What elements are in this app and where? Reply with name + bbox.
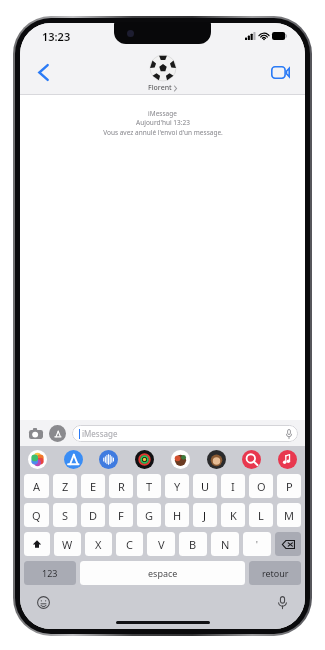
staticText: D	[89, 508, 98, 523]
button[interactable]: U	[193, 474, 217, 498]
staticText: '	[256, 539, 258, 550]
staticText: 123	[42, 567, 58, 579]
button[interactable]: Q	[24, 503, 49, 527]
button[interactable]: R	[109, 474, 133, 498]
button[interactable]: N	[211, 532, 239, 556]
button[interactable]: H	[165, 503, 189, 527]
button[interactable]: Apple Music	[278, 450, 297, 469]
button[interactable]: Camera	[27, 425, 44, 442]
button[interactable]: Backspace	[275, 532, 301, 556]
button[interactable]: Florent	[148, 55, 177, 93]
staticText: Q	[32, 508, 41, 523]
staticText: W	[62, 537, 73, 552]
staticText: P	[286, 479, 293, 494]
button[interactable]: O	[249, 474, 273, 498]
staticText: Aujourd'hui 13:23	[136, 118, 190, 127]
button[interactable]: W	[54, 532, 81, 556]
staticText: X	[95, 537, 102, 552]
button[interactable]: C	[116, 532, 143, 556]
button[interactable]: '	[243, 532, 271, 556]
staticText: Florent	[148, 83, 172, 93]
button[interactable]: G	[137, 503, 161, 527]
button[interactable]: App Store apps	[49, 425, 66, 442]
button[interactable]: P	[277, 474, 301, 498]
staticText: Y	[174, 479, 181, 494]
staticText: N	[221, 537, 230, 552]
staticText: retour	[262, 567, 289, 579]
button[interactable]: T	[137, 474, 161, 498]
button[interactable]: Memoji 2	[207, 450, 226, 469]
button[interactable]: F	[109, 503, 133, 527]
button[interactable]: 123	[24, 561, 76, 585]
staticText: C	[126, 537, 133, 552]
button[interactable]: Dictation	[273, 593, 291, 611]
staticText: E	[90, 479, 97, 494]
staticText: L	[258, 508, 264, 523]
button[interactable]: FaceTime video call	[267, 59, 293, 85]
button[interactable]: Music	[135, 450, 154, 469]
staticText: V	[158, 537, 165, 552]
button[interactable]: K	[221, 503, 245, 527]
button[interactable]: B	[179, 532, 207, 556]
button[interactable]: Z	[53, 474, 77, 498]
staticText: A	[33, 479, 41, 494]
button[interactable]: S	[53, 503, 77, 527]
button[interactable]: Emoji keyboard	[34, 593, 52, 611]
staticText: 13:23	[42, 29, 71, 44]
staticText: iMessage	[82, 428, 118, 439]
staticText: Vous avez annulé l'envoi d'un message.	[103, 128, 223, 137]
staticText: K	[230, 508, 237, 523]
button[interactable]: Memoji 1	[171, 450, 190, 469]
staticText: iMessage	[148, 109, 177, 118]
button[interactable]: J	[193, 503, 217, 527]
button[interactable]: Images search	[242, 450, 261, 469]
staticText: U	[201, 479, 210, 494]
staticText: R	[118, 479, 125, 494]
button[interactable]: Back	[30, 59, 56, 85]
button[interactable]: retour	[249, 561, 301, 585]
staticText: J	[203, 508, 207, 523]
staticText: Z	[62, 479, 69, 494]
button[interactable]: espace	[80, 561, 245, 585]
staticText: M	[284, 508, 294, 523]
button[interactable]: X	[85, 532, 112, 556]
staticText: B	[189, 537, 197, 552]
button[interactable]: Shift	[24, 532, 50, 556]
button[interactable]: V	[147, 532, 175, 556]
button[interactable]: Audio message	[99, 450, 118, 469]
button[interactable]: Y	[165, 474, 189, 498]
staticText: O	[257, 479, 266, 494]
staticText: T	[146, 479, 153, 494]
button[interactable]: D	[81, 503, 105, 527]
button[interactable]: A	[24, 474, 49, 498]
button[interactable]: M	[277, 503, 301, 527]
button[interactable]: L	[249, 503, 273, 527]
button[interactable]: App Store	[64, 450, 83, 469]
staticText: F	[118, 508, 124, 523]
staticText: I	[231, 479, 235, 494]
staticText: espace	[148, 567, 178, 579]
staticText: G	[145, 508, 154, 523]
button[interactable]: iMessage	[72, 425, 298, 442]
button[interactable]: Photos	[28, 450, 47, 469]
button[interactable]: E	[81, 474, 105, 498]
button[interactable]: I	[221, 474, 245, 498]
staticText: S	[62, 508, 69, 523]
staticText: H	[173, 508, 182, 523]
